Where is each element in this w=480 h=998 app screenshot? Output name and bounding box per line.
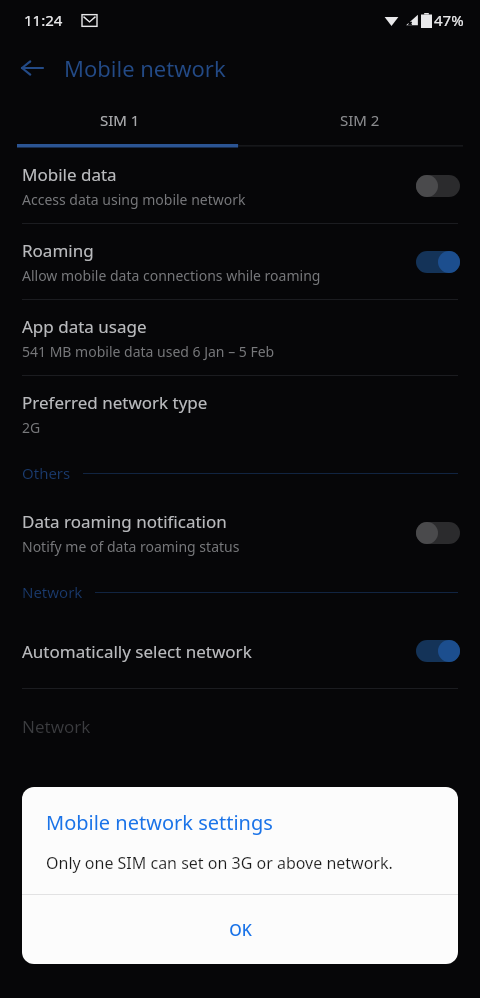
staticText: SIM 2: [340, 110, 380, 130]
staticText: 47%: [434, 10, 464, 30]
staticText: 11:24: [24, 10, 63, 30]
staticText: Automatically select network: [22, 640, 252, 663]
staticText: SIM 1: [100, 110, 140, 130]
staticText: Network: [22, 582, 83, 602]
staticText: Data roaming notification: [22, 510, 227, 533]
button[interactable]: Data roaming notification: [0, 495, 480, 570]
button[interactable]: OK: [22, 895, 458, 964]
button[interactable]: Automatically select network: [0, 614, 480, 688]
staticText: OK: [229, 919, 252, 941]
staticText: 541 MB mobile data used 6 Jan – 5 Feb: [22, 342, 275, 361]
button[interactable]: SIM 1: [0, 96, 240, 144]
staticText: Notify me of data roaming status: [22, 537, 240, 556]
staticText: Mobile network settings: [46, 809, 273, 836]
button[interactable]: Toggle on: [412, 245, 464, 279]
staticText: Mobile network: [64, 53, 226, 83]
staticText: 2G: [22, 418, 41, 437]
staticText: Access data using mobile network: [22, 190, 246, 209]
staticText: Preferred network type: [22, 391, 208, 414]
button[interactable]: Roaming: [0, 224, 480, 299]
staticText: Network: [22, 715, 91, 738]
button[interactable]: Mobile data: [0, 148, 480, 223]
staticText: Roaming: [22, 239, 94, 262]
button[interactable]: Preferred network type: [0, 376, 480, 451]
staticText: Allow mobile data connections while roam…: [22, 266, 321, 285]
button[interactable]: SIM 2: [240, 96, 480, 144]
staticText: Only one SIM can set on 3G or above netw…: [46, 852, 393, 874]
button[interactable]: Back: [10, 46, 54, 90]
staticText: Mobile data: [22, 163, 117, 186]
button[interactable]: Toggle off: [412, 516, 464, 550]
staticText: App data usage: [22, 315, 147, 338]
button[interactable]: Toggle on: [412, 634, 464, 668]
button[interactable]: App data usage: [0, 300, 480, 375]
button[interactable]: Toggle off: [412, 169, 464, 203]
staticText: Others: [22, 463, 71, 483]
button[interactable]: Network: [0, 689, 480, 763]
